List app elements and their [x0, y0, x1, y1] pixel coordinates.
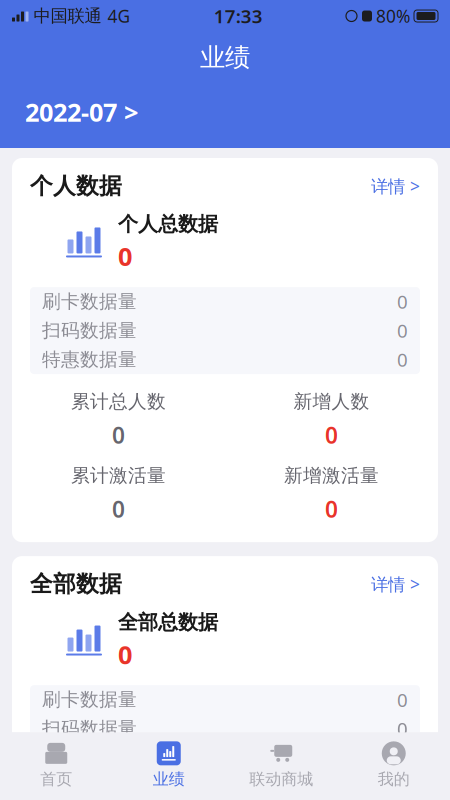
staticText: 个人总数据	[118, 212, 218, 236]
staticText: 全部总数据	[118, 610, 218, 635]
staticText: 0	[397, 745, 408, 770]
staticText: 0	[397, 289, 408, 314]
staticText: 刷卡数据量	[42, 290, 137, 313]
staticText: 刷卡数据量	[42, 688, 137, 711]
staticText: 特惠数据量	[42, 348, 137, 371]
button[interactable]: 联动商城	[225, 736, 337, 794]
button[interactable]: 详情 >	[371, 174, 420, 197]
staticText: 新增激活量	[284, 464, 379, 487]
staticText: 0	[118, 637, 132, 671]
staticText: 我的	[378, 769, 410, 789]
staticText: 0	[325, 494, 338, 524]
staticText: 累计激活量	[71, 464, 166, 487]
staticText: 新增人数	[293, 390, 369, 413]
staticText: 17:33	[214, 4, 263, 28]
staticText: 扫码数据量	[42, 319, 137, 342]
button[interactable]: 详情 >	[371, 572, 420, 595]
staticText: 0	[397, 687, 408, 712]
button[interactable]: 首页	[0, 736, 112, 794]
staticText: 2022-07 >	[25, 95, 138, 129]
staticText: 80%	[376, 4, 410, 27]
button[interactable]: 我的	[337, 736, 450, 794]
staticText: 4G	[107, 4, 130, 27]
staticText: 特惠数据量	[42, 746, 137, 769]
staticText: 业绩	[200, 42, 250, 73]
staticText: 详情 >	[371, 174, 420, 197]
staticText: 联动商城	[249, 769, 313, 789]
staticText: 个人数据	[30, 172, 122, 200]
button[interactable]: 业绩	[112, 736, 225, 794]
staticText: 详情 >	[371, 572, 420, 595]
staticText: 0	[325, 420, 338, 450]
staticText: 业绩	[153, 769, 185, 789]
button[interactable]: 2022-07 >	[25, 95, 138, 129]
staticText: 0	[397, 716, 408, 741]
staticText: 全部数据	[30, 570, 122, 598]
staticText: 中国联通	[33, 5, 101, 27]
staticText: 0	[112, 494, 125, 524]
staticText: 累计总人数	[71, 390, 166, 413]
staticText: 0	[397, 347, 408, 372]
staticText: 0	[112, 420, 125, 450]
staticText: 0	[397, 318, 408, 343]
staticText: 首页	[40, 769, 72, 789]
staticText: 0	[118, 239, 132, 273]
staticText: 扫码数据量	[42, 717, 137, 740]
